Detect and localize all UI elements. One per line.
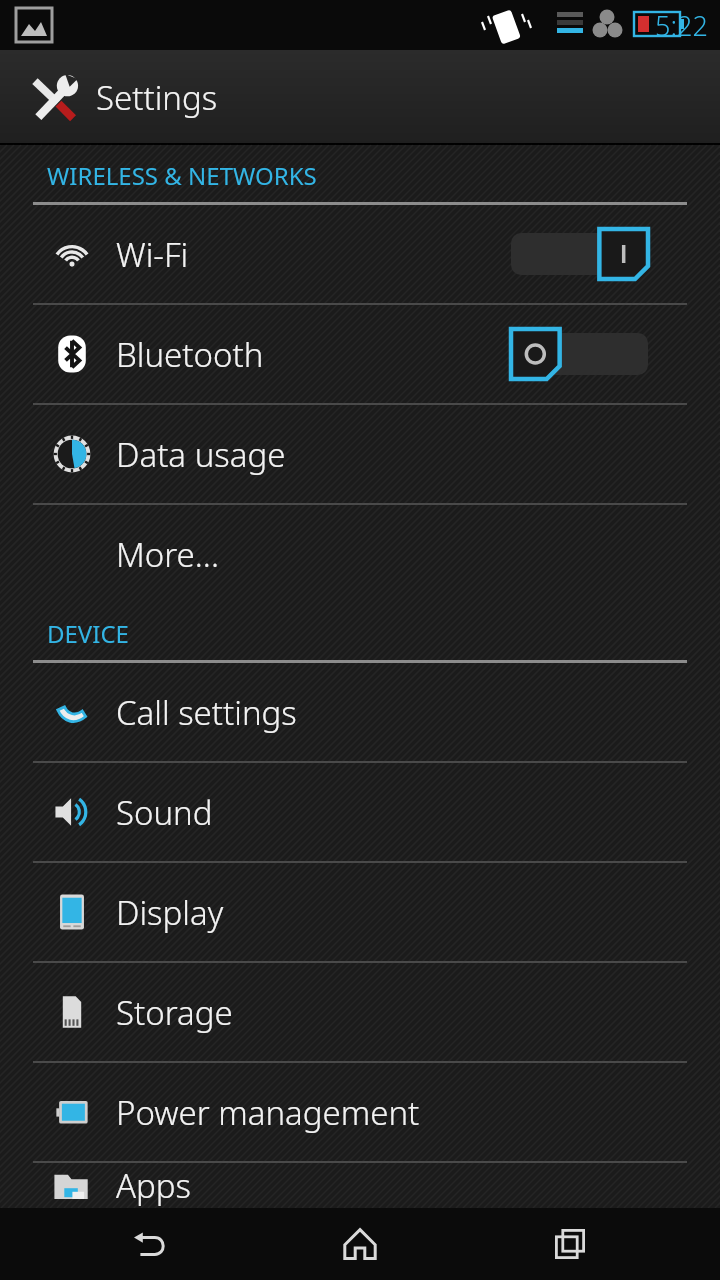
staticText: Settings — [96, 75, 218, 120]
button[interactable]: Back — [90, 1208, 210, 1280]
button[interactable]: Bluetooth — [0, 305, 720, 403]
staticText: Power management — [116, 1090, 720, 1135]
staticText: DEVICE — [47, 617, 129, 650]
button[interactable]: Settings — [0, 50, 720, 145]
button[interactable]: Display — [0, 863, 720, 961]
button[interactable]: Recent apps — [510, 1208, 630, 1280]
staticText: Apps — [116, 1163, 720, 1208]
button[interactable]: Home — [300, 1208, 420, 1280]
button[interactable]: Wi-Fi — [0, 205, 720, 303]
button[interactable]: Sound — [0, 763, 720, 861]
staticText: Data usage — [116, 432, 720, 477]
staticText: 5:22 — [655, 7, 708, 44]
button[interactable]: Data usage — [0, 405, 720, 503]
staticText: More... — [116, 532, 720, 577]
button[interactable]: Apps — [0, 1163, 720, 1208]
staticText: Call settings — [116, 690, 720, 735]
button[interactable]: Storage — [0, 963, 720, 1061]
staticText: Sound — [116, 790, 720, 835]
staticText: Wi-Fi — [116, 232, 511, 277]
staticText: Bluetooth — [116, 332, 511, 377]
button[interactable]: Switch on — [511, 229, 648, 279]
button[interactable]: Call settings — [0, 663, 720, 761]
staticText: WIRELESS & NETWORKS — [47, 159, 317, 192]
button[interactable]: Switch off — [511, 329, 648, 379]
button[interactable]: Power management — [0, 1063, 720, 1161]
button[interactable]: More... — [0, 505, 720, 603]
staticText: Display — [116, 890, 720, 935]
staticText: Storage — [116, 990, 720, 1035]
